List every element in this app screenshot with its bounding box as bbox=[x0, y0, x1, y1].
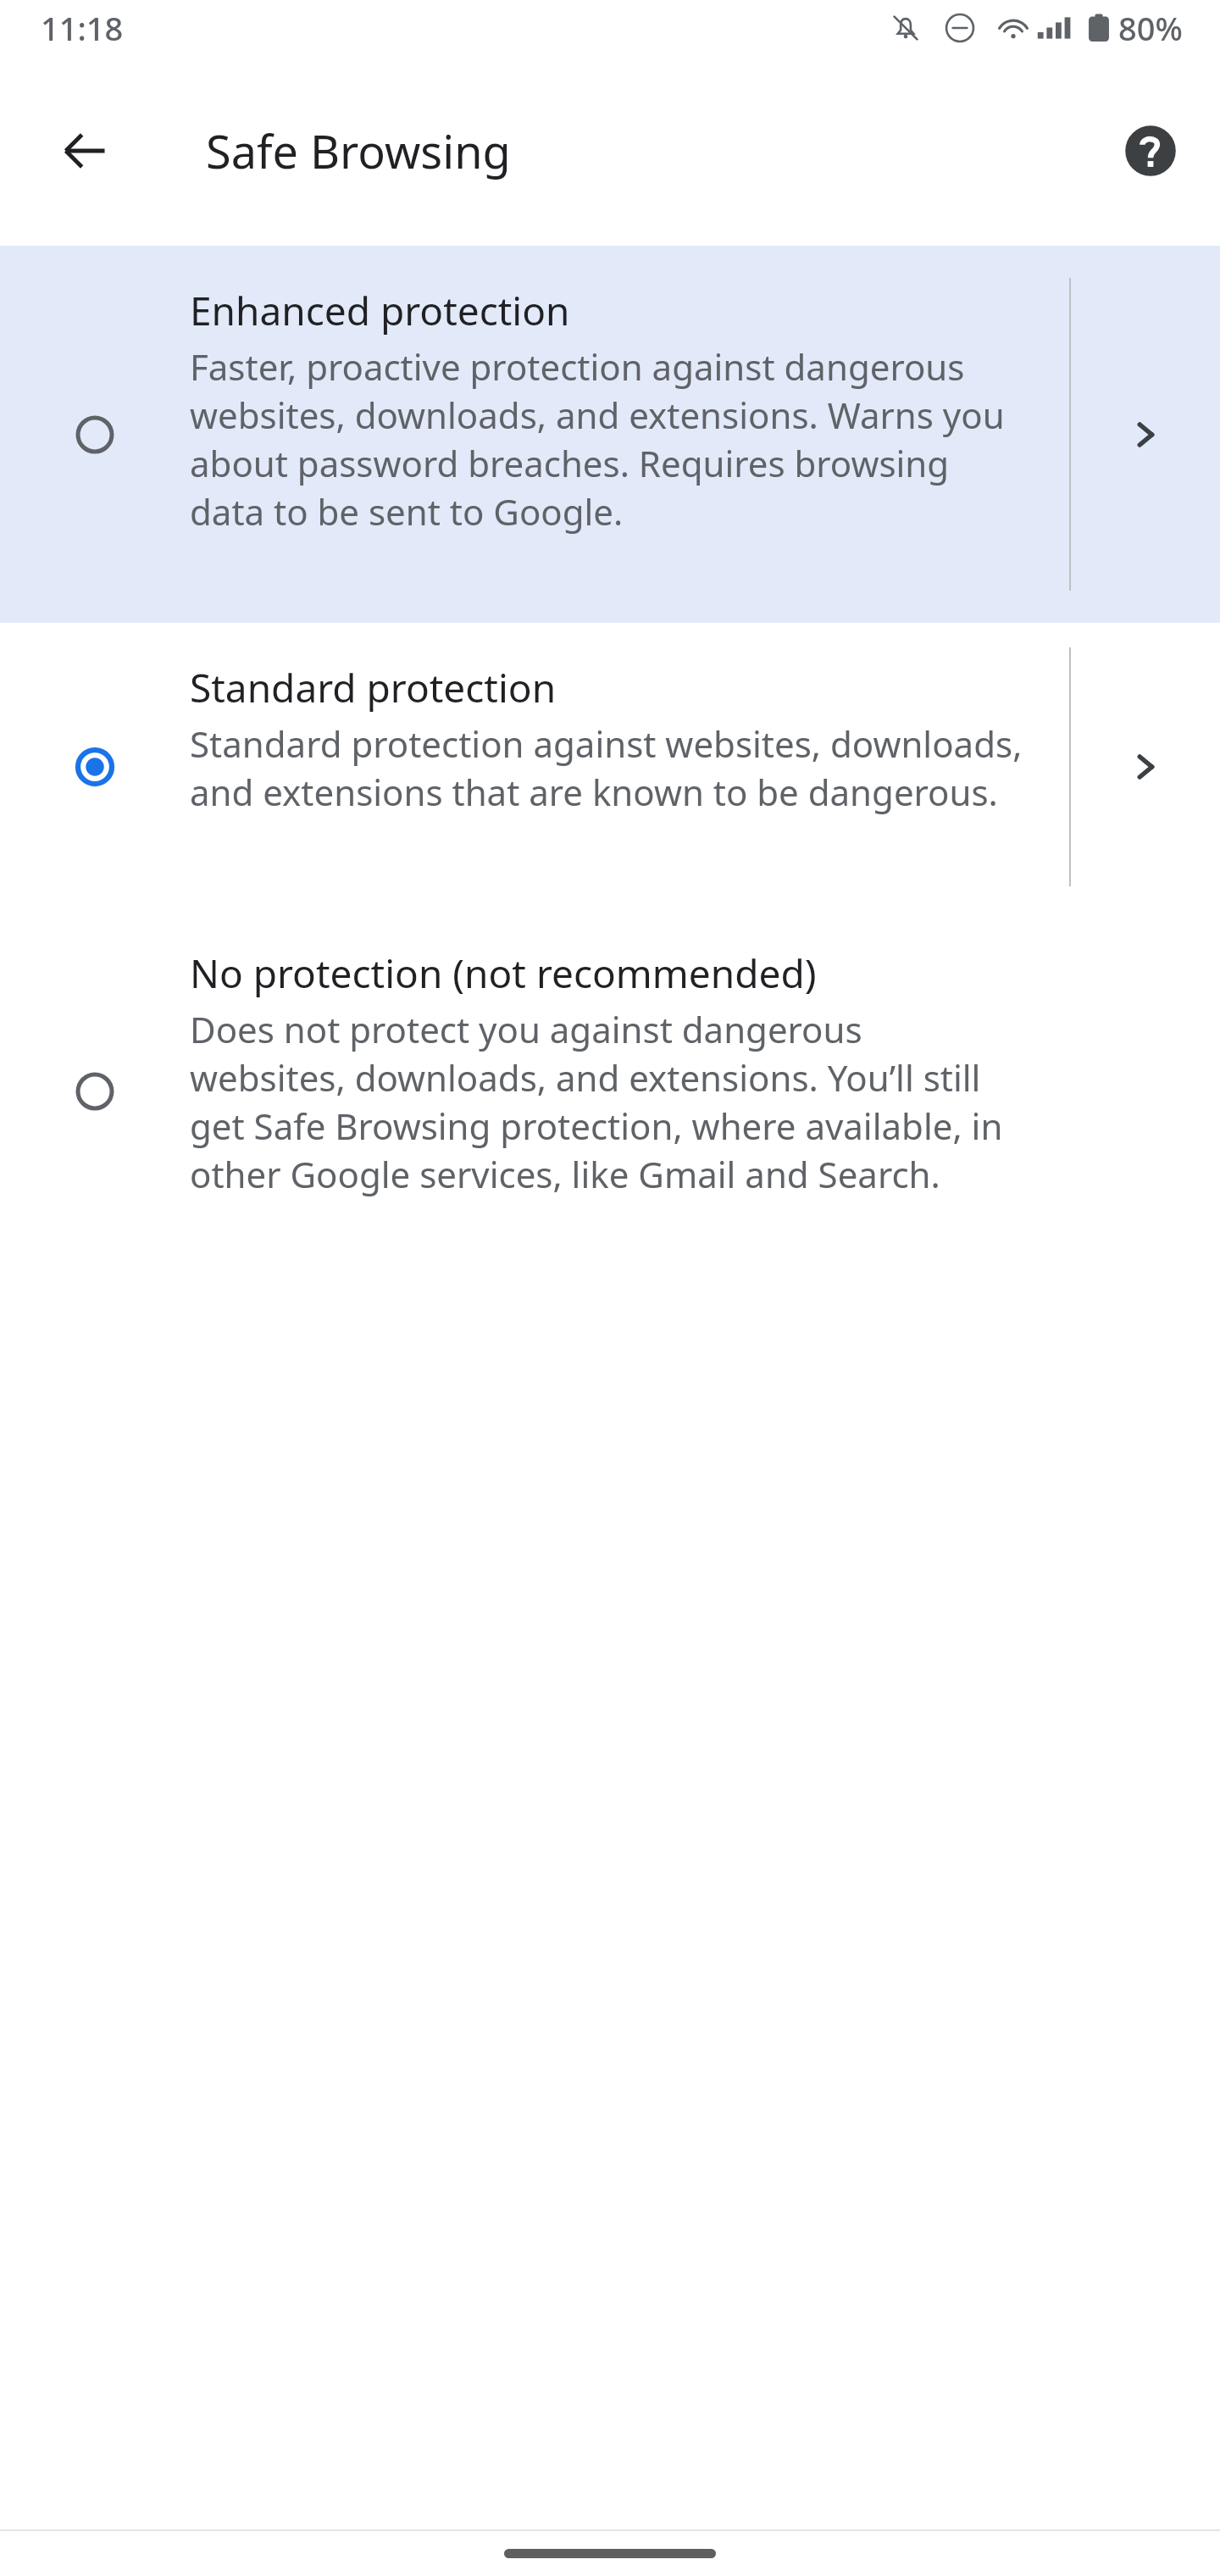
button[interactable]: Open Enhanced protection details bbox=[1070, 246, 1220, 623]
button[interactable]: No protection (not recommended) bbox=[0, 911, 1220, 1271]
button[interactable]: Standard protection bbox=[0, 623, 1220, 911]
staticText: Does not protect you against dangerous w… bbox=[190, 1005, 1025, 1198]
staticText: Standard protection bbox=[190, 661, 557, 714]
button[interactable]: Help bbox=[1112, 112, 1189, 190]
staticText: Safe Browsing bbox=[206, 119, 511, 182]
button[interactable]: Open Standard protection details bbox=[1070, 623, 1220, 911]
button[interactable]: Enhanced protection bbox=[0, 246, 1220, 623]
staticText: 11:18 bbox=[41, 6, 124, 50]
staticText: Faster, proactive protection against dan… bbox=[190, 342, 1025, 536]
staticText: 80% bbox=[1118, 6, 1183, 50]
staticText: No protection (not recommended) bbox=[190, 947, 817, 1000]
staticText: Enhanced protection bbox=[190, 284, 570, 337]
button[interactable]: Back bbox=[44, 110, 125, 192]
staticText: Standard protection against websites, do… bbox=[190, 719, 1025, 816]
